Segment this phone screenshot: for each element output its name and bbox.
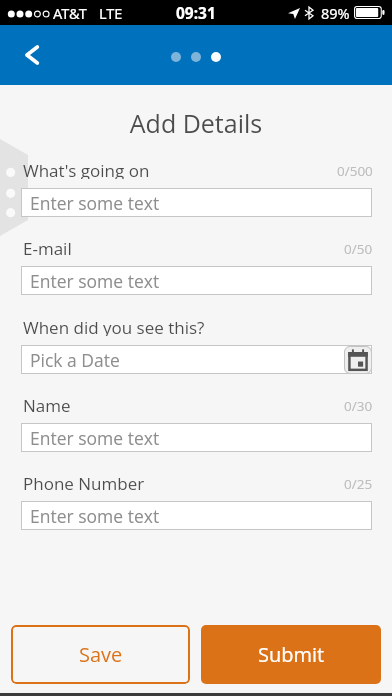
staticText: Pick a Date: [30, 348, 120, 372]
button[interactable]: Enter some text: [21, 423, 372, 452]
button[interactable]: Back: [12, 35, 52, 75]
button[interactable]: Save: [11, 625, 190, 684]
staticText: 09:31: [176, 2, 216, 23]
staticText: E-mail: [23, 237, 72, 257]
staticText: 0/25: [344, 475, 373, 493]
button[interactable]: Submit: [201, 625, 381, 684]
staticText: Name: [23, 394, 71, 414]
staticText: Enter some text: [30, 426, 160, 450]
staticText: Add Details: [0, 106, 392, 140]
staticText: 0/30: [344, 397, 373, 415]
staticText: Submit: [258, 641, 325, 668]
staticText: Enter some text: [30, 504, 160, 528]
staticText: Phone Number: [23, 472, 145, 492]
staticText: 89%: [321, 3, 350, 23]
staticText: 0/500: [337, 162, 373, 180]
staticText: Enter some text: [30, 269, 160, 293]
button[interactable]: Enter some text: [21, 501, 372, 530]
staticText: AT&T: [53, 3, 87, 23]
button[interactable]: Enter some text: [21, 266, 372, 295]
staticText: When did you see this?: [23, 316, 205, 336]
staticText: LTE: [99, 3, 123, 23]
button[interactable]: Pick a Date: [344, 346, 372, 374]
staticText: What's going on: [23, 159, 150, 179]
button[interactable]: Pick a Date: [21, 345, 372, 374]
staticText: Enter some text: [30, 191, 160, 215]
button[interactable]: Enter some text: [21, 188, 372, 217]
staticText: Save: [79, 641, 123, 668]
staticText: 0/50: [344, 240, 373, 258]
